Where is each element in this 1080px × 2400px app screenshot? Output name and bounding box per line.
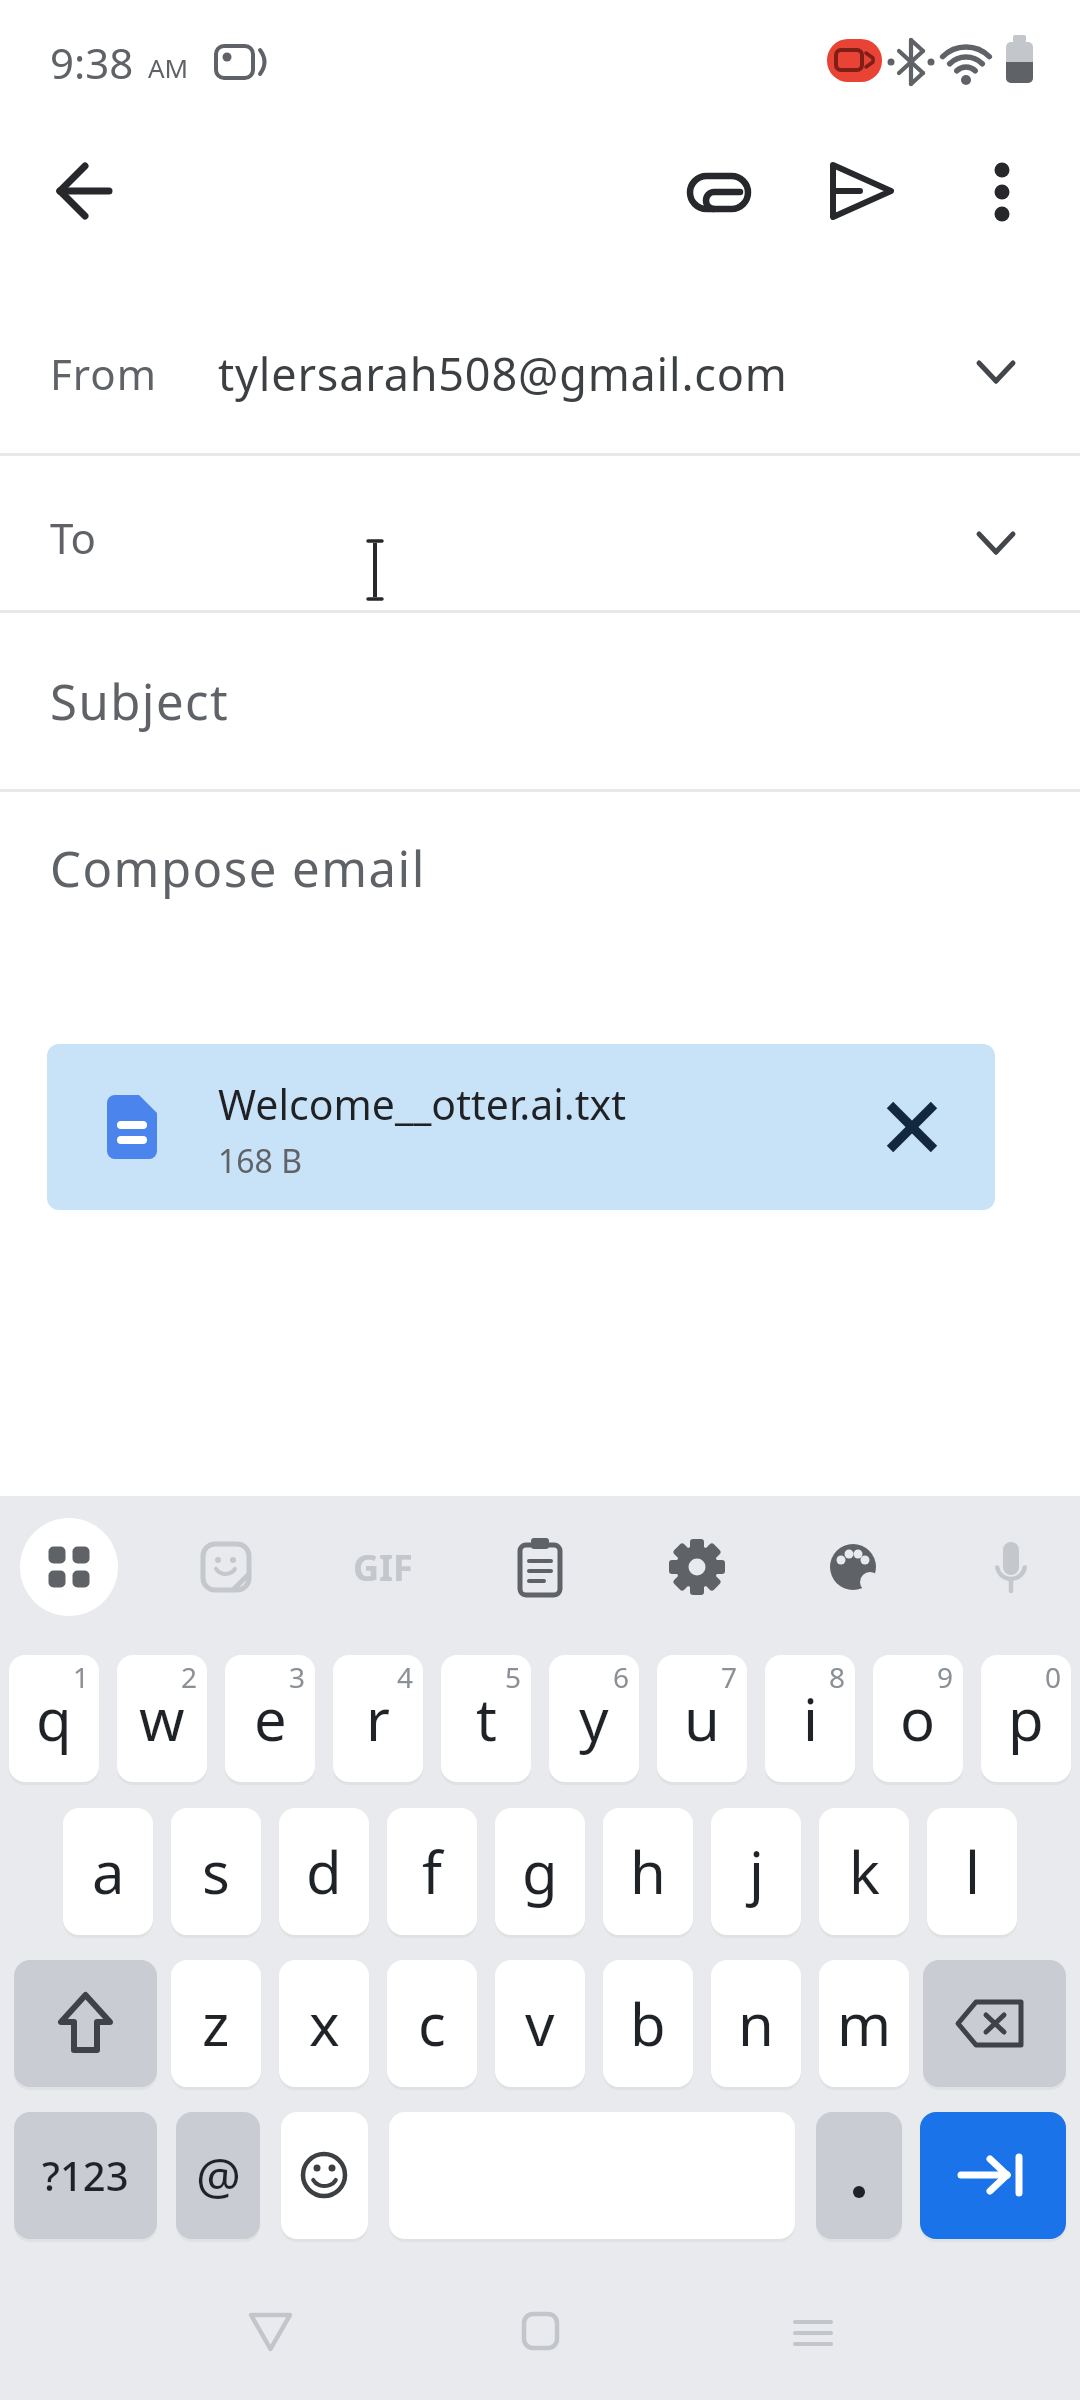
button[interactable]: [927, 1808, 1017, 1935]
staticText: @: [196, 2141, 241, 2209]
staticText: d: [306, 1832, 342, 1911]
staticText: q: [36, 1679, 72, 1758]
button[interactable]: [387, 1960, 477, 2087]
button[interactable]: [40, 145, 130, 235]
staticText: l: [965, 1832, 980, 1911]
staticText: r: [366, 1679, 390, 1758]
staticText: 9: [937, 1658, 954, 1696]
button[interactable]: [819, 1808, 909, 1935]
button[interactable]: [333, 1655, 423, 1782]
staticText: n: [738, 1984, 774, 2063]
button[interactable]: [923, 1960, 1066, 2087]
button[interactable]: [760, 2290, 860, 2370]
button[interactable]: [63, 1808, 153, 1935]
button[interactable]: [490, 2290, 590, 2370]
button[interactable]: [549, 1655, 639, 1782]
button[interactable]: [20, 1518, 118, 1616]
button[interactable]: [181, 1522, 271, 1612]
staticText: a: [92, 1832, 125, 1911]
button[interactable]: [920, 2112, 1066, 2239]
staticText: m: [837, 1984, 892, 2063]
staticText: 3: [289, 1658, 306, 1696]
staticText: 168 B: [218, 1139, 303, 1183]
button[interactable]: [495, 1960, 585, 2087]
button[interactable]: [0, 272, 1080, 453]
button[interactable]: [981, 1655, 1071, 1782]
staticText: o: [900, 1679, 936, 1758]
staticText: u: [684, 1679, 720, 1758]
staticText: 1: [73, 1658, 90, 1696]
button[interactable]: [171, 1808, 261, 1935]
button[interactable]: [338, 1522, 428, 1612]
staticText: s: [202, 1832, 230, 1911]
button[interactable]: [14, 2112, 157, 2239]
button[interactable]: [495, 1522, 585, 1612]
button[interactable]: [279, 1960, 369, 2087]
button[interactable]: [652, 1522, 742, 1612]
button[interactable]: [279, 1808, 369, 1935]
button[interactable]: [441, 1655, 531, 1782]
staticText: 5: [505, 1658, 522, 1696]
staticText: AM: [148, 50, 189, 85]
button[interactable]: [966, 1522, 1056, 1612]
staticText: Subject: [50, 668, 230, 735]
staticText: c: [418, 1984, 446, 2063]
staticText: 2: [181, 1658, 198, 1696]
staticText: Compose email: [50, 835, 426, 902]
button[interactable]: [675, 145, 765, 235]
staticText: v: [525, 1984, 555, 2063]
staticText: x: [309, 1984, 340, 2063]
button[interactable]: [711, 1808, 801, 1935]
staticText: 0: [1045, 1658, 1062, 1696]
staticText: t: [476, 1679, 497, 1758]
button[interactable]: [603, 1808, 693, 1935]
staticText: b: [630, 1984, 666, 2063]
button[interactable]: [0, 613, 1080, 789]
staticText: k: [849, 1832, 880, 1911]
button[interactable]: [657, 1655, 747, 1782]
staticText: ?123: [42, 2148, 129, 2202]
button[interactable]: [220, 2290, 320, 2370]
button[interactable]: [0, 456, 1080, 610]
staticText: 6: [613, 1658, 630, 1696]
staticText: 7: [721, 1658, 738, 1696]
staticText: j: [749, 1832, 764, 1911]
button[interactable]: [0, 792, 1080, 992]
staticText: 4: [397, 1658, 414, 1696]
button[interactable]: [868, 1083, 958, 1173]
staticText: To: [50, 509, 96, 566]
button[interactable]: [47, 1044, 995, 1210]
staticText: z: [202, 1984, 230, 2063]
button[interactable]: [387, 1808, 477, 1935]
button[interactable]: [809, 1522, 899, 1612]
staticText: 9:38: [50, 34, 134, 91]
staticText: 8: [829, 1658, 846, 1696]
staticText: GIF: [353, 1543, 413, 1592]
button[interactable]: [171, 1960, 261, 2087]
staticText: h: [630, 1832, 666, 1911]
button[interactable]: [957, 145, 1047, 235]
button[interactable]: [281, 2112, 368, 2239]
button[interactable]: [816, 2112, 902, 2239]
staticText: w: [139, 1679, 185, 1758]
staticText: f: [422, 1832, 442, 1911]
button[interactable]: [117, 1655, 207, 1782]
staticText: tylersarah508@gmail.com: [218, 343, 788, 404]
button[interactable]: [225, 1655, 315, 1782]
button[interactable]: [816, 145, 906, 235]
button[interactable]: [495, 1808, 585, 1935]
button[interactable]: [14, 1960, 157, 2087]
button[interactable]: [176, 2112, 260, 2239]
button[interactable]: [873, 1655, 963, 1782]
staticText: Welcome__otter.ai.txt: [218, 1076, 627, 1132]
button[interactable]: [603, 1960, 693, 2087]
staticText: p: [1008, 1679, 1044, 1758]
button[interactable]: [819, 1960, 909, 2087]
button[interactable]: [765, 1655, 855, 1782]
button[interactable]: [9, 1655, 99, 1782]
button[interactable]: [711, 1960, 801, 2087]
staticText: e: [254, 1679, 287, 1758]
staticText: i: [803, 1679, 818, 1758]
staticText: g: [522, 1832, 558, 1911]
